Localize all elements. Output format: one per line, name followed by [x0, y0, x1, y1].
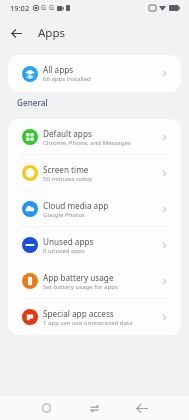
button[interactable]: Recent apps: [34, 396, 58, 420]
staticText: All apps: [43, 64, 74, 75]
staticText: Cloud media app: [43, 200, 109, 211]
staticText: Screen time: [43, 164, 89, 175]
button[interactable]: App battery usage: [8, 263, 181, 299]
staticText: 19:02: [10, 3, 30, 13]
button[interactable]: Default apps: [8, 119, 181, 155]
staticText: 0 unused apps: [43, 247, 85, 255]
staticText: Google Photos: [43, 211, 85, 219]
button[interactable]: Back: [130, 396, 154, 420]
staticText: 66 apps installed: [43, 75, 91, 83]
staticText: Special app access: [43, 308, 114, 319]
button[interactable]: All apps: [8, 55, 181, 92]
button[interactable]: Screen time: [8, 155, 181, 191]
staticText: 1 app can use unrestricted data: [43, 319, 133, 327]
button[interactable]: Special app access: [8, 299, 181, 335]
staticText: App battery usage: [43, 272, 114, 283]
staticText: G: [41, 3, 47, 13]
staticText: Set battery usage for apps: [43, 283, 118, 291]
staticText: Unused apps: [43, 236, 94, 247]
button[interactable]: Home: [82, 396, 106, 420]
staticText: Default apps: [43, 128, 92, 139]
button[interactable]: Navigate up: [5, 22, 27, 44]
staticText: Chrome, Phone, and Messages: [43, 139, 131, 147]
staticText: 50 minutes today: [43, 175, 93, 183]
staticText: G: [49, 3, 55, 13]
button[interactable]: Unused apps: [8, 227, 181, 263]
staticText: General: [17, 97, 48, 108]
staticText: Apps: [38, 25, 66, 41]
button[interactable]: Cloud media app: [8, 191, 181, 227]
